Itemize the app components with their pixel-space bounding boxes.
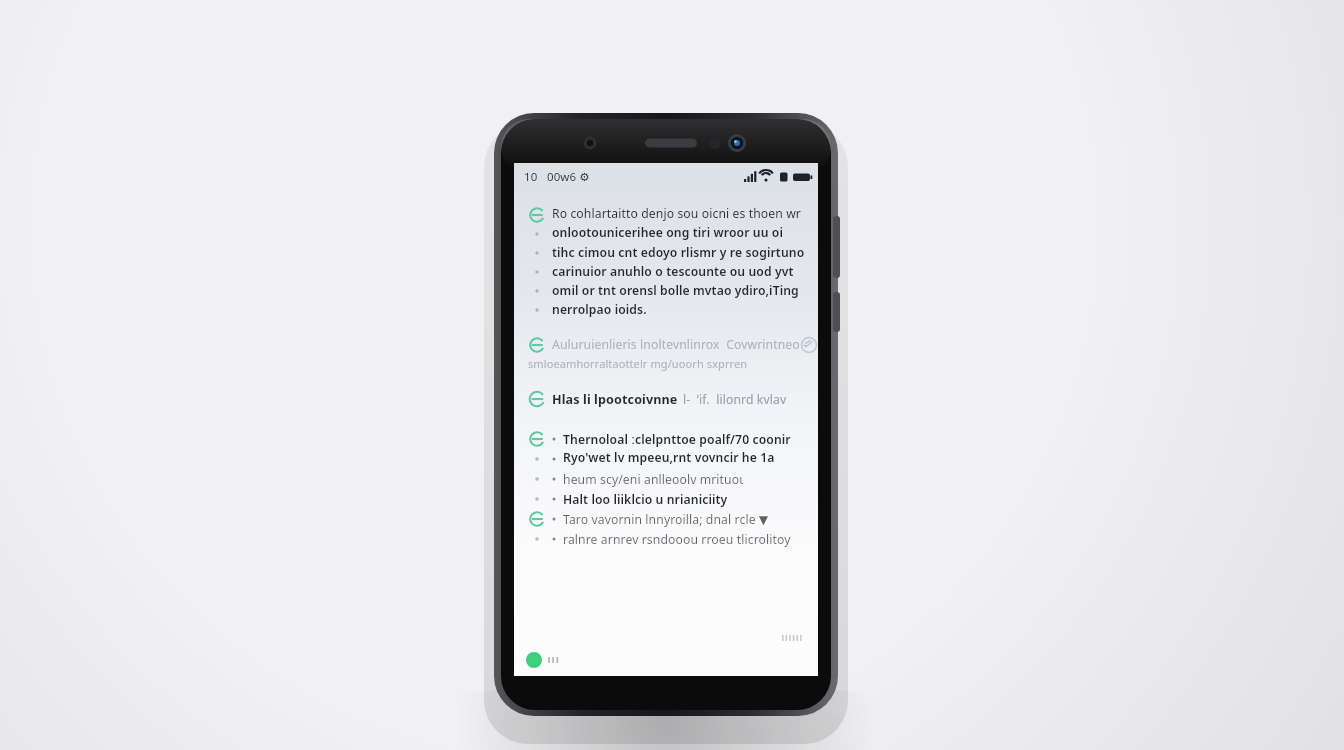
button[interactable]: Ro cohlartaitto denjo sou oicni es thoen… bbox=[514, 205, 818, 319]
button[interactable]: More bbox=[782, 634, 804, 642]
staticText: heum scy/eni anlleoolv mrituoɩ bbox=[563, 471, 744, 488]
staticText: ralnre arnrev rsndooou rroeu tlicrolitoy bbox=[563, 531, 791, 548]
staticText: nerrolpao ioids. bbox=[552, 301, 647, 318]
staticText: Ro cohlartaitto denjo sou oicni es thoen… bbox=[552, 205, 806, 224]
staticText: tihc cimou cnt edoyo rlismr y re sogirtu… bbox=[552, 244, 805, 261]
staticText: Thernoloal ːclelpnttoe poalf/70 coonir bbox=[563, 431, 791, 448]
staticText: 10 bbox=[524, 169, 538, 185]
staticText: Ryo'wet lv mpeeu,rnt vovncir he 1a nnoli… bbox=[563, 449, 806, 469]
staticText: Taro vavornin lnnyroilla; dnal rcle ▼ bbox=[563, 511, 769, 528]
button[interactable]: Auluruienlieris lnoltevnlinrox Covwrintn… bbox=[514, 335, 818, 373]
button[interactable]: Thernoloal ːclelpnttoe poalf/70 coonir bbox=[514, 429, 818, 549]
staticText: omil or tnt orensl bolle mvtao ydiro,iTi… bbox=[552, 282, 799, 299]
button[interactable]: Info bbox=[808, 336, 810, 354]
staticText: carinuior anuhlo o tescounte ou uod yvt bbox=[552, 263, 794, 280]
staticText: 00w6 ⚙ bbox=[547, 169, 590, 185]
button[interactable]: Status bbox=[526, 652, 562, 668]
staticText: onlootounicerihee ong tiri wroor uu oi v… bbox=[552, 224, 806, 243]
button[interactable]: Hlas li lpootcoivnne bbox=[514, 389, 818, 409]
staticText: Hlas li lpootcoivnne bbox=[552, 391, 678, 408]
staticText: l‐ ’if. lilonrd kvlav bbox=[683, 391, 787, 408]
staticText: smloeamhorraltaottelr mg/uoorh sxprren bbox=[528, 356, 748, 371]
staticText: Halt loo liiklcio u nrianiciity bbox=[563, 491, 728, 508]
staticText: Auluruienlieris lnoltevnlinrox Covwrintn… bbox=[552, 336, 808, 353]
